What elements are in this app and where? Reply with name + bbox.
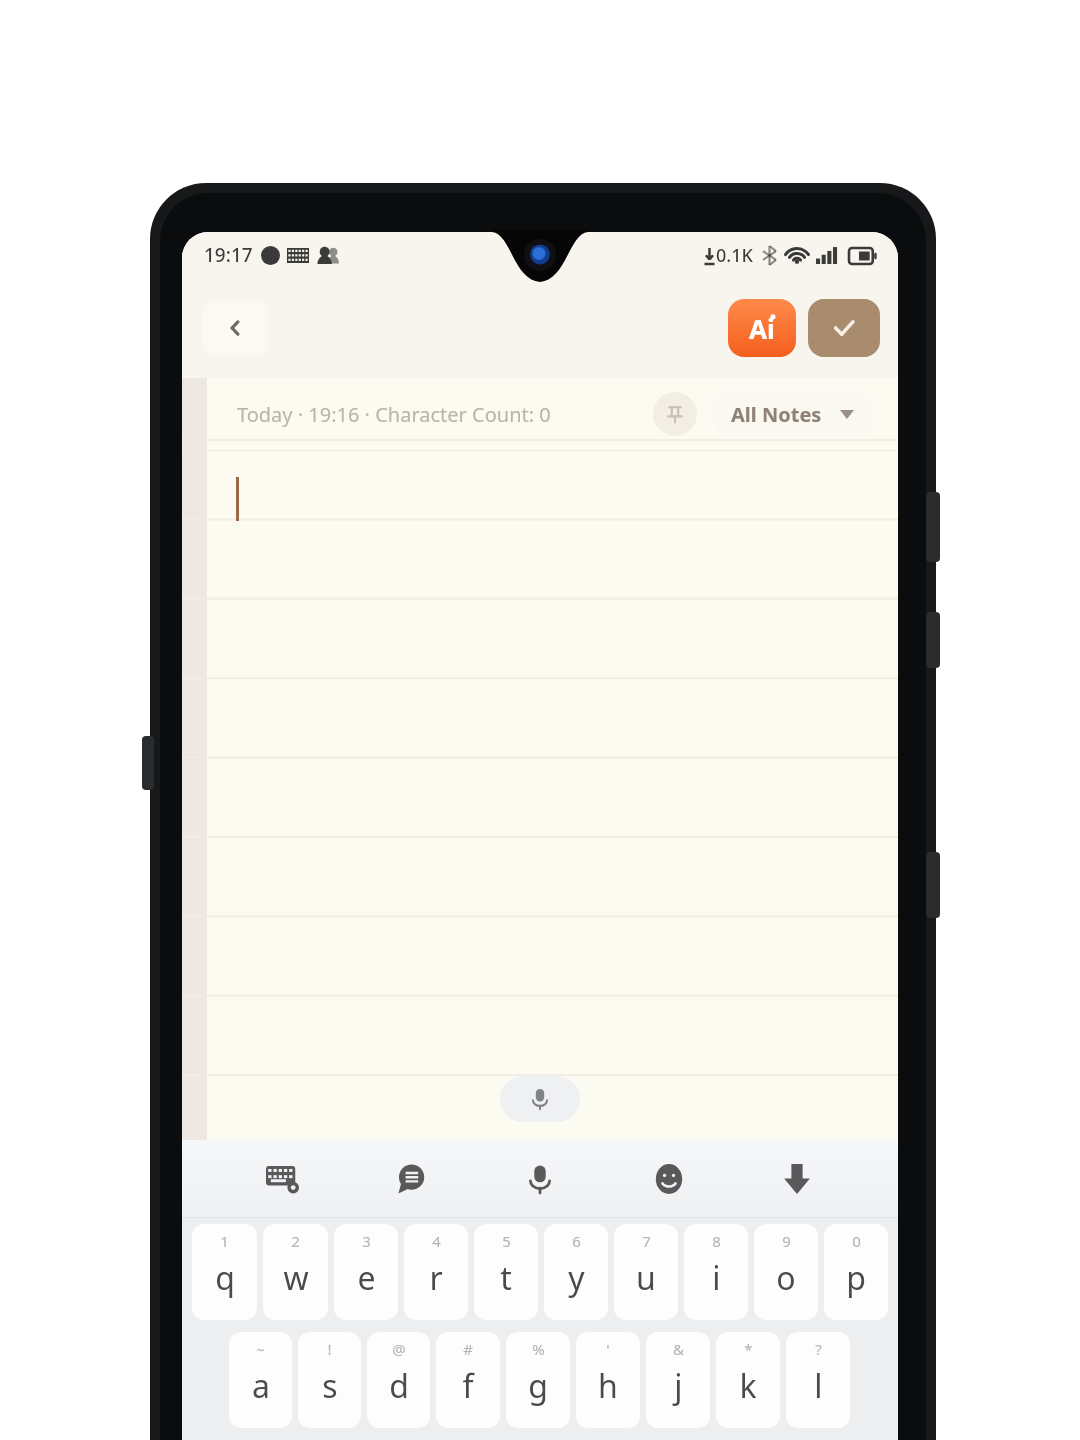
staticText: 0 bbox=[852, 1231, 861, 1251]
staticText: d bbox=[389, 1364, 409, 1408]
staticText: 9 bbox=[782, 1231, 791, 1251]
staticText: s bbox=[322, 1364, 338, 1408]
staticText: & bbox=[673, 1339, 684, 1359]
staticText: o bbox=[776, 1256, 796, 1300]
button[interactable]: 6 bbox=[544, 1224, 608, 1320]
button[interactable]: 3 bbox=[334, 1224, 398, 1320]
button[interactable]: 1 bbox=[192, 1224, 257, 1320]
button[interactable]: Emoji bbox=[641, 1151, 697, 1207]
staticText: 19:17 bbox=[204, 242, 253, 268]
staticText: y bbox=[568, 1256, 585, 1300]
button[interactable]: Text suggestions bbox=[383, 1151, 439, 1207]
staticText: ? bbox=[815, 1339, 822, 1359]
button[interactable]: Voice input bbox=[500, 1076, 580, 1122]
button[interactable]: Back bbox=[202, 300, 268, 356]
button[interactable]: & bbox=[646, 1332, 710, 1428]
button[interactable]: ' bbox=[576, 1332, 640, 1428]
button[interactable]: * bbox=[716, 1332, 780, 1428]
button[interactable]: 7 bbox=[614, 1224, 678, 1320]
staticText: % bbox=[532, 1339, 545, 1359]
staticText: 6 bbox=[572, 1231, 581, 1251]
staticText: f bbox=[462, 1364, 474, 1408]
staticText: 3 bbox=[362, 1231, 371, 1251]
staticText: ' bbox=[606, 1339, 610, 1359]
staticText: 1 bbox=[220, 1231, 229, 1251]
button[interactable]: Pin note bbox=[653, 392, 697, 436]
button[interactable]: 9 bbox=[754, 1224, 818, 1320]
staticText: @ bbox=[392, 1339, 406, 1359]
button[interactable]: @ bbox=[367, 1332, 430, 1428]
staticText: i bbox=[712, 1256, 721, 1300]
staticText: * bbox=[744, 1339, 753, 1359]
button[interactable]: ~ bbox=[229, 1332, 292, 1428]
button[interactable]: Hide keyboard bbox=[769, 1151, 825, 1207]
staticText: Ai bbox=[749, 311, 775, 346]
staticText: g bbox=[528, 1364, 548, 1408]
button[interactable]: # bbox=[436, 1332, 500, 1428]
staticText: 4 bbox=[432, 1231, 441, 1251]
staticText: ! bbox=[327, 1339, 332, 1359]
button[interactable]: All Notes bbox=[731, 391, 854, 437]
staticText: q bbox=[215, 1256, 235, 1300]
button[interactable]: Voice typing bbox=[512, 1151, 568, 1207]
staticText: All Notes bbox=[731, 401, 822, 428]
button[interactable]: Keyboard settings bbox=[255, 1151, 311, 1207]
button[interactable]: 8 bbox=[684, 1224, 748, 1320]
staticText: p bbox=[846, 1256, 866, 1300]
button[interactable]: 4 bbox=[404, 1224, 468, 1320]
button[interactable]: ? bbox=[786, 1332, 850, 1428]
button[interactable]: ! bbox=[298, 1332, 361, 1428]
button[interactable]: 2 bbox=[263, 1224, 328, 1320]
button[interactable]: % bbox=[506, 1332, 570, 1428]
staticText: l bbox=[814, 1364, 823, 1408]
staticText: 8 bbox=[712, 1231, 721, 1251]
button[interactable]: 0 bbox=[824, 1224, 888, 1320]
staticText: k bbox=[739, 1364, 757, 1408]
staticText: w bbox=[283, 1256, 309, 1300]
staticText: r bbox=[429, 1256, 443, 1300]
staticText: h bbox=[598, 1364, 618, 1408]
staticText: 2 bbox=[291, 1231, 300, 1251]
staticText: # bbox=[463, 1339, 473, 1359]
button[interactable]: AI assist bbox=[728, 299, 796, 357]
staticText: j bbox=[674, 1364, 683, 1408]
button[interactable]: 5 bbox=[474, 1224, 538, 1320]
staticText: 7 bbox=[642, 1231, 651, 1251]
staticText: 0.1K bbox=[716, 243, 753, 268]
staticText: u bbox=[636, 1256, 656, 1300]
staticText: a bbox=[252, 1364, 270, 1408]
button[interactable]: Done bbox=[808, 299, 880, 357]
staticText: t bbox=[500, 1256, 512, 1300]
staticText: e bbox=[357, 1256, 376, 1300]
staticText: 5 bbox=[502, 1231, 511, 1251]
staticText: ~ bbox=[256, 1339, 265, 1359]
staticText: Today · 19:16 · Character Count: 0 bbox=[237, 401, 551, 428]
